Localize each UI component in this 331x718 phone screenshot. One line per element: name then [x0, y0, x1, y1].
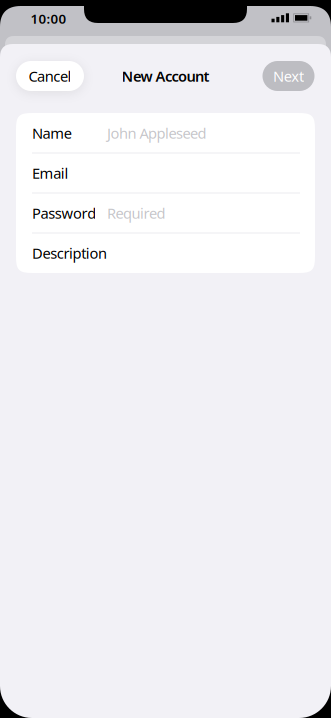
staticText: Cancel	[28, 66, 71, 86]
staticText: Next	[273, 66, 304, 86]
staticText: Email	[32, 163, 68, 183]
staticText: Name	[32, 123, 72, 143]
button[interactable]: Password	[16, 193, 315, 233]
button[interactable]: Description	[16, 233, 315, 273]
button[interactable]: Name	[16, 113, 315, 153]
button[interactable]: Email	[16, 153, 315, 193]
staticText: Password	[32, 203, 96, 223]
staticText: Description	[32, 243, 107, 263]
button[interactable]: Cancel	[16, 61, 84, 91]
staticText: Required	[107, 203, 165, 223]
staticText: John Appleseed	[107, 123, 206, 143]
staticText: New Account	[121, 66, 209, 86]
button[interactable]: Next	[262, 61, 314, 91]
staticText: 10:00	[30, 10, 66, 27]
